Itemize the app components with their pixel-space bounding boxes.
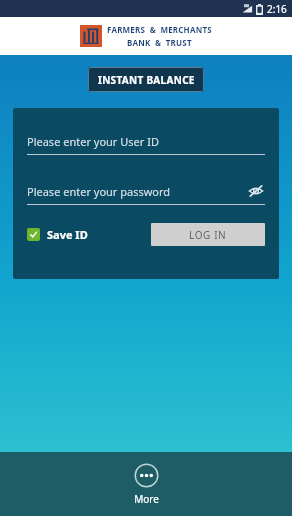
staticText: More [134,492,159,506]
staticText: Please enter your password [27,184,247,199]
button[interactable]: Show password [247,182,265,200]
staticText: BANK & TRUST [127,37,192,48]
staticText: Please enter your User ID [27,134,159,149]
staticText: LOG IN [189,228,227,242]
button[interactable]: INSTANT BALANCE [88,67,204,92]
button[interactable]: LOG IN [151,223,265,246]
staticText: Save ID [47,227,88,242]
button[interactable]: Save ID [27,227,88,242]
button[interactable]: More [120,461,173,508]
staticText: FARMERS & MERCHANTS [107,24,212,35]
button[interactable]: Please enter your User ID [27,134,265,155]
staticText: 2:16 [267,2,287,16]
staticText: INSTANT BALANCE [98,73,195,87]
button[interactable]: Please enter your password [27,182,265,205]
